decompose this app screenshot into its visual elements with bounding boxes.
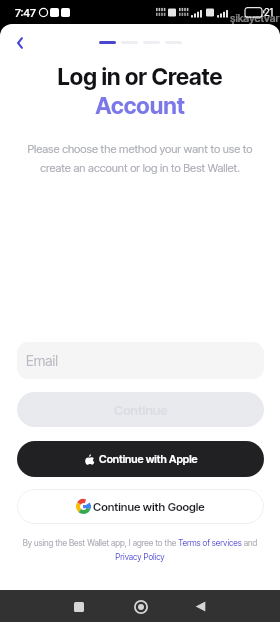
button[interactable]: Email [17,342,264,379]
staticText: By using the Best Wallet app, I agree to… [11,538,269,562]
staticText: 21 [264,6,274,18]
button[interactable]: Continue with Google [17,489,264,524]
staticText: Log in or Create Account [0,63,280,120]
staticText: Email [26,352,58,369]
staticText: şikayetvar [230,11,280,24]
button[interactable]: Back [7,30,32,55]
staticText: Continue with Apple [99,453,198,466]
staticText: Continue [114,402,168,418]
button[interactable]: Continue [17,392,264,427]
staticText: Please choose the method your want to us… [10,142,270,174]
button[interactable]: Recent apps [66,590,92,622]
button[interactable]: Continue with Apple [17,441,264,477]
staticText: 7:47 [15,6,36,19]
button[interactable]: Home [128,590,154,622]
button[interactable]: Back [187,590,213,622]
staticText: Continue with Google [93,500,205,514]
